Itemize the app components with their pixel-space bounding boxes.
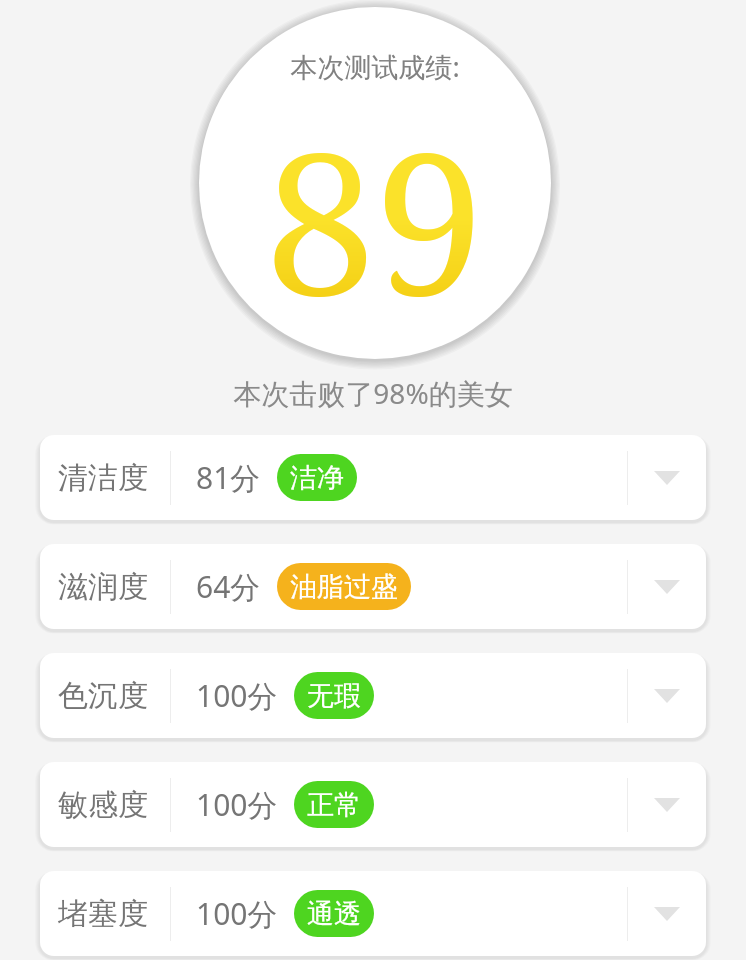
staticText: 滋润度	[58, 568, 148, 606]
button[interactable]: 滋润度	[40, 544, 706, 629]
staticText: 本次测试成绩:	[290, 48, 460, 85]
staticText: 敏感度	[58, 786, 148, 824]
staticText: 64分	[196, 566, 261, 607]
button[interactable]: 展开 色沉度	[628, 653, 706, 738]
staticText: 100分	[196, 784, 278, 825]
button[interactable]: 色沉度	[40, 653, 706, 738]
staticText: 正常	[307, 788, 361, 822]
button[interactable]: 展开 敏感度	[628, 762, 706, 847]
button[interactable]: 展开 滋润度	[628, 544, 706, 629]
staticText: 油脂过盛	[290, 570, 398, 604]
staticText: 无瑕	[307, 679, 361, 713]
button[interactable]: 堵塞度	[40, 871, 706, 956]
staticText: 89	[265, 85, 485, 300]
button[interactable]: 展开 堵塞度	[628, 871, 706, 956]
staticText: 洁净	[290, 461, 344, 495]
staticText: 通透	[307, 897, 361, 931]
button[interactable]: 敏感度	[40, 762, 706, 847]
button[interactable]: 清洁度	[40, 435, 706, 520]
staticText: 色沉度	[58, 677, 148, 715]
staticText: 堵塞度	[58, 895, 148, 933]
staticText: 81分	[196, 457, 261, 498]
button[interactable]: 展开 清洁度	[628, 435, 706, 520]
staticText: 100分	[196, 893, 278, 934]
staticText: 本次击败了98%的美女	[233, 374, 513, 412]
staticText: 清洁度	[58, 459, 148, 497]
staticText: 100分	[196, 675, 278, 716]
